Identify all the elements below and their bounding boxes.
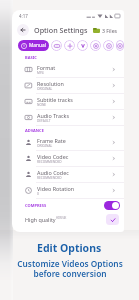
button[interactable]: Resolution xyxy=(12,78,124,94)
staticText: Audio Tracks xyxy=(37,112,70,119)
staticText: Option Settings xyxy=(34,25,88,35)
staticText: ORIGINAL xyxy=(37,144,53,148)
button[interactable]: Format xyxy=(12,62,124,78)
staticText: MP4 xyxy=(37,71,44,75)
staticText: COMPRESS xyxy=(25,203,47,208)
staticText: BASIC xyxy=(25,55,37,60)
button[interactable]: Video Rotation xyxy=(12,183,124,199)
staticText: Manual xyxy=(29,42,46,49)
staticText: Subtitle tracks xyxy=(37,96,73,103)
staticText: NONE xyxy=(37,103,47,107)
button[interactable]: Audio Codec xyxy=(12,167,124,183)
staticText: Customize Videos Options before conversi… xyxy=(17,258,123,279)
staticText: 3 Files xyxy=(102,27,118,34)
staticText: 4:17 xyxy=(19,13,28,19)
button[interactable]: Preset 1 xyxy=(51,40,62,51)
staticText: HDR/4K xyxy=(56,216,67,220)
button[interactable]: Preset 4 xyxy=(90,40,101,51)
staticText: High quality xyxy=(25,216,56,223)
button[interactable]: Preset 2 xyxy=(64,40,75,51)
staticText: ORIGINAL xyxy=(37,87,53,91)
staticText: Frame Rate xyxy=(37,137,66,144)
staticText: Edit Options xyxy=(37,241,102,255)
staticText: ADVANCE xyxy=(25,128,44,133)
staticText: Video Rotation xyxy=(37,185,75,192)
button[interactable]: Subtitle tracks xyxy=(12,94,124,110)
button[interactable]: High quality enabled xyxy=(106,214,119,225)
button[interactable]: High quality xyxy=(25,212,119,226)
button[interactable]: Video Codec xyxy=(12,151,124,167)
button[interactable]: Preset 5 xyxy=(103,40,114,51)
staticText: RECOMMENDED xyxy=(37,176,62,180)
button[interactable]: Audio Tracks xyxy=(12,110,124,126)
staticText: Video Codec xyxy=(37,153,69,160)
button[interactable]: COMPRESS xyxy=(25,199,120,212)
button[interactable]: Frame Rate xyxy=(12,135,124,151)
button[interactable]: Back xyxy=(17,24,29,36)
button[interactable]: Preset 6 xyxy=(116,40,124,51)
staticText: Format xyxy=(37,64,56,71)
staticText: Audio Codec xyxy=(37,169,69,176)
button[interactable]: Manual xyxy=(18,40,49,51)
staticText: 0 xyxy=(37,192,39,196)
staticText: DEFAULT xyxy=(37,119,51,123)
button[interactable]: 3 Files xyxy=(92,27,119,34)
staticText: RECOMMENDED xyxy=(37,160,62,164)
staticText: Resolution xyxy=(37,80,64,87)
button[interactable]: Preset 3 xyxy=(77,40,88,51)
